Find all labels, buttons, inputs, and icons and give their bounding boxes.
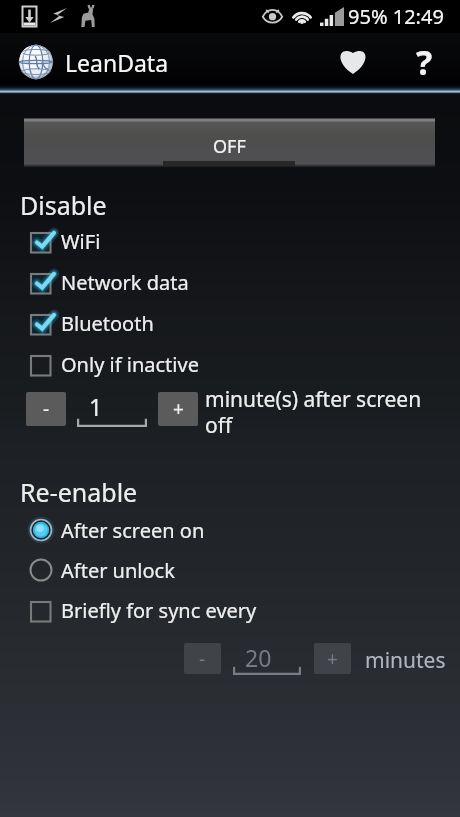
staticText: 1 [89,391,103,422]
button[interactable]: Network data [24,262,436,302]
staticText: - [43,396,50,422]
staticText: ? [416,39,433,85]
button[interactable]: After unlock [24,550,436,590]
staticText: + [173,396,184,422]
button[interactable]: WiFi [24,221,436,261]
staticText: 20 [245,642,272,673]
staticText: After screen on [61,517,205,544]
button[interactable]: Decrease [26,392,66,426]
staticText: + [327,646,338,672]
button[interactable]: Value [77,392,147,427]
staticText: - [199,646,206,672]
staticText: After unlock [61,557,175,584]
staticText: Briefly for sync every [61,597,257,624]
button[interactable]: Increase [158,392,198,426]
button[interactable]: OFF [24,118,435,168]
button[interactable]: Briefly for sync every [24,590,436,630]
button[interactable]: After screen on [24,510,436,550]
staticText: Bluetooth [61,310,154,337]
staticText: Only if inactive [61,351,199,378]
staticText: WiFi [61,228,101,255]
staticText: OFF [213,134,246,159]
staticText: Disable [20,188,107,222]
button[interactable]: Value [233,643,301,675]
button[interactable]: Bluetooth [24,303,436,343]
button[interactable]: Decrease [184,643,221,674]
button[interactable]: Increase [314,643,351,674]
staticText: minutes [365,646,446,675]
button[interactable]: Help [404,33,444,91]
staticText: Network data [61,269,189,296]
button[interactable]: Favorite [328,33,378,91]
staticText: LeanData [65,47,169,78]
staticText: 95% 12:49 [348,3,444,30]
staticText: Re-enable [20,475,138,509]
staticText: minute(s) after screen off [205,385,422,440]
button[interactable]: Only if inactive [24,344,436,384]
